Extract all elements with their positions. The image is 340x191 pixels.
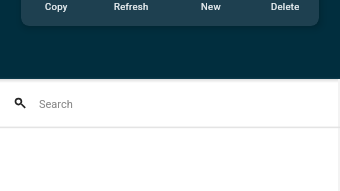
staticText: Search — [39, 98, 73, 111]
staticText: Copy — [45, 1, 68, 12]
button[interactable]: Delete — [248, 0, 319, 26]
other: Search — [14, 97, 26, 109]
button[interactable]: Refresh — [93, 0, 171, 26]
staticText: Delete — [271, 1, 300, 12]
staticText: New — [201, 1, 221, 12]
button[interactable]: Search — [0, 80, 340, 127]
button[interactable]: Copy — [21, 0, 93, 26]
button[interactable]: New — [171, 0, 248, 26]
staticText: Refresh — [114, 1, 149, 12]
